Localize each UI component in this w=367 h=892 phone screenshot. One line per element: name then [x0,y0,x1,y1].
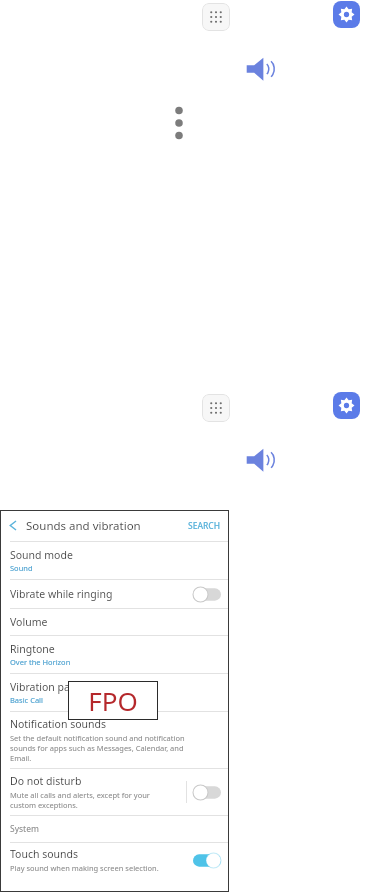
staticText: Vibrate while ringing [10,587,113,601]
button[interactable] [193,785,221,800]
button[interactable]: Settings [333,1,360,28]
staticText: SEARCH [188,520,221,532]
staticText: Vibration pattern [10,680,95,694]
staticText: Mute all calls and alerts, except for yo… [10,790,150,810]
button[interactable] [193,853,221,868]
button[interactable]: Sound mode [0,542,229,579]
staticText: Set the default notification sound and n… [10,733,185,763]
button[interactable]: Touch sounds [0,843,229,877]
button[interactable]: Apps [202,3,230,31]
staticText: Basic Call [10,695,43,705]
staticText: FPO [88,683,138,718]
staticText: Notification sounds [10,717,107,731]
button[interactable]: Vibrate while ringing [0,580,229,608]
staticText: Do not disturb [10,774,82,788]
button[interactable]: Notification sounds [0,712,229,768]
button[interactable] [193,587,221,602]
button[interactable]: SEARCH [188,520,221,532]
staticText: Touch sounds [10,847,79,861]
staticText: Volume [10,615,48,629]
button[interactable]: Volume [245,55,279,83]
button[interactable]: More options [170,106,188,140]
button[interactable]: Apps [202,394,230,422]
staticText: Play sound when making screen selection. [10,863,159,873]
button[interactable]: Vibration pattern [0,674,229,711]
button[interactable]: Back [0,510,229,541]
button[interactable]: Volume [245,446,279,474]
button[interactable]: Ringtone [0,636,229,673]
button[interactable]: Volume [0,609,229,635]
other: Back [0,510,26,541]
staticText: Sound [10,563,33,573]
staticText: Over the Horizon [10,657,71,667]
staticText: System [10,823,39,835]
staticText: Ringtone [10,642,55,656]
button[interactable]: Do not disturb [0,769,229,815]
staticText: Sounds and vibration [26,518,141,534]
staticText: Sound mode [10,548,73,562]
button[interactable]: Settings [333,392,360,419]
